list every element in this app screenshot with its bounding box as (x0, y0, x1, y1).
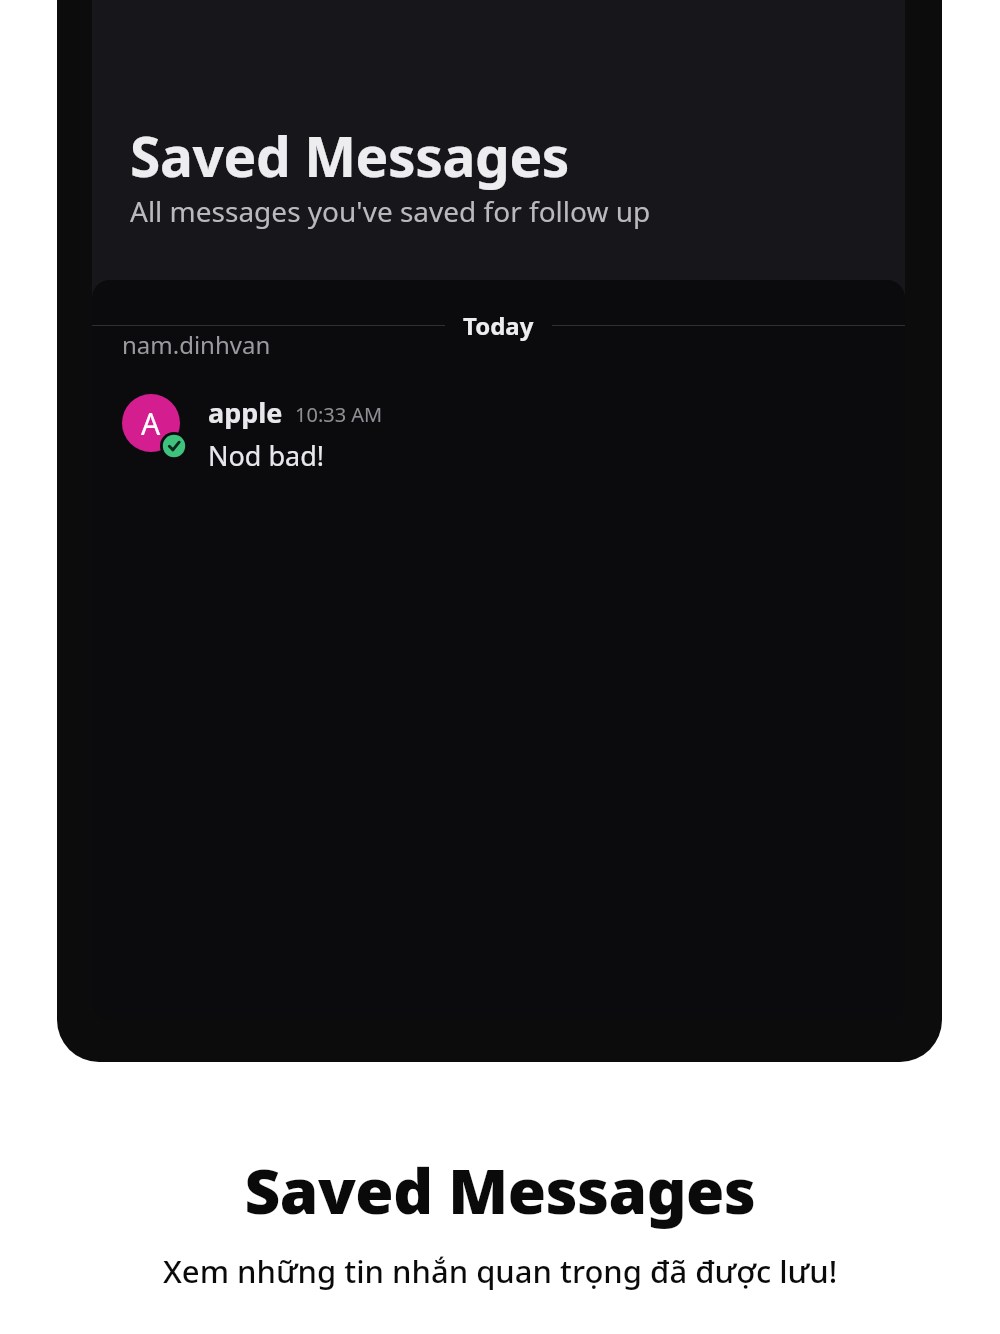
staticText: All messages you've saved for follow up (130, 192, 651, 230)
staticText: 10:33 AM (295, 401, 383, 428)
staticText: Nod bad! (208, 437, 325, 474)
staticText: Today (463, 309, 534, 342)
staticText: Xem những tin nhắn quan trọng đã được lư… (0, 1250, 1000, 1292)
staticText: A (141, 403, 161, 444)
button[interactable]: Today (445, 305, 552, 346)
other: apple avatar (122, 394, 188, 460)
staticText: nam.dinhvan (122, 328, 271, 361)
button[interactable]: apple avatar (92, 390, 905, 484)
staticText: apple (208, 394, 283, 431)
staticText: Saved Messages (0, 1148, 1000, 1232)
staticText: Saved Messages (130, 118, 570, 193)
